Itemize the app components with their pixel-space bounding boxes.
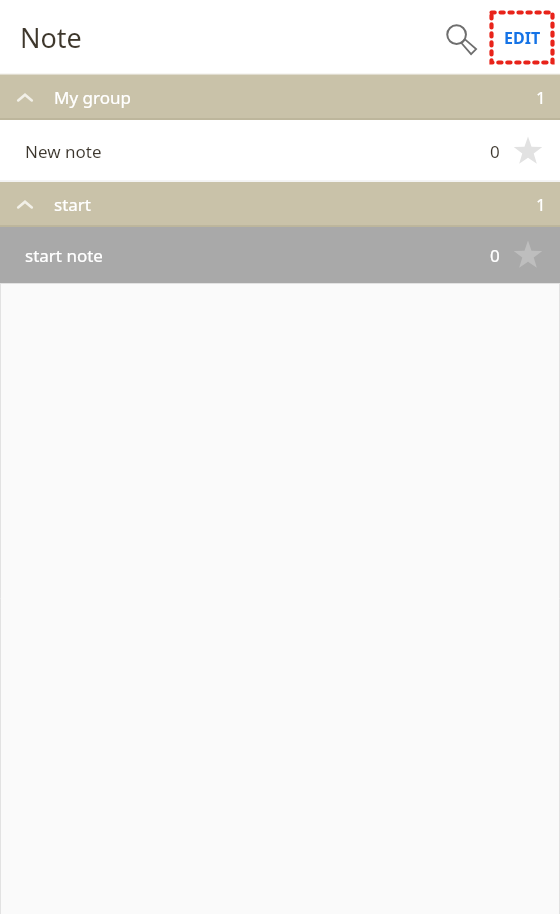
staticText: 0 [490,140,500,163]
staticText: start [54,193,91,216]
staticText: 1 [536,193,546,216]
button[interactable]: EDIT [489,10,555,65]
button[interactable]: Search [436,14,484,62]
button[interactable]: Favorite [510,237,546,273]
button[interactable]: New note [0,120,560,182]
button[interactable]: Favorite [510,133,546,169]
staticText: 1 [536,86,546,109]
staticText: New note [25,140,102,163]
staticText: 0 [490,244,500,267]
staticText: My group [54,86,131,109]
staticText: start note [25,244,103,267]
button[interactable]: start note [0,227,560,283]
staticText: Note [20,19,82,56]
button[interactable]: start [0,182,560,227]
button[interactable]: My group [0,75,560,120]
staticText: EDIT [504,27,541,49]
